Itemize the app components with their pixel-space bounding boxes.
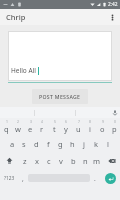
button[interactable]: POST MESSAGE <box>32 89 88 104</box>
button[interactable]: c <box>43 152 55 169</box>
staticText: u <box>76 124 81 134</box>
button[interactable]: s <box>18 135 30 152</box>
staticText: x <box>35 156 39 166</box>
button[interactable]: l <box>102 135 114 152</box>
staticText: 2:42 <box>108 1 118 8</box>
staticText: t <box>53 124 56 134</box>
staticText: c <box>47 156 51 166</box>
staticText: m <box>93 156 101 166</box>
staticText: 2 <box>17 119 19 124</box>
button[interactable]: Shift <box>0 152 18 169</box>
button[interactable]: g <box>54 135 66 152</box>
button[interactable]: f <box>42 135 54 152</box>
staticText: g <box>58 139 63 149</box>
button[interactable]: 5 <box>48 118 60 135</box>
staticText: a <box>10 139 15 149</box>
button[interactable]: v <box>55 152 67 169</box>
staticText: 3 <box>30 119 32 124</box>
button[interactable]: m <box>91 152 103 169</box>
staticText: h <box>70 139 75 149</box>
button[interactable]: Hello All <box>8 31 112 83</box>
staticText: z <box>23 156 27 166</box>
button[interactable]: 0 <box>108 118 120 135</box>
staticText: 1 <box>6 119 8 124</box>
staticText: POST MESSAGE <box>39 93 81 100</box>
button[interactable]: ?123 <box>0 169 18 187</box>
staticText: s <box>22 139 26 149</box>
button[interactable]: j <box>78 135 90 152</box>
staticText: l <box>107 139 109 149</box>
staticText: , <box>22 174 24 183</box>
staticText: 7 <box>78 119 80 124</box>
staticText: o <box>100 124 105 134</box>
staticText: i <box>89 124 91 134</box>
button[interactable]: z <box>18 152 31 169</box>
button[interactable]: 8 <box>84 118 96 135</box>
button[interactable]: n <box>79 152 91 169</box>
staticText: k <box>94 139 99 149</box>
staticText: y <box>64 124 68 134</box>
button[interactable]: More options <box>104 9 120 25</box>
button[interactable]: 4 <box>36 118 48 135</box>
button[interactable]: 6 <box>60 118 72 135</box>
staticText: p <box>112 124 117 134</box>
staticText: e <box>28 124 33 134</box>
button[interactable]: Voice input <box>109 107 120 118</box>
button[interactable]: d <box>30 135 42 152</box>
staticText: Chrip <box>6 12 26 22</box>
button[interactable]: b <box>67 152 79 169</box>
staticText: 9 <box>102 119 104 124</box>
button[interactable]: 7 <box>72 118 84 135</box>
staticText: q <box>4 124 9 134</box>
button[interactable]: 3 <box>24 118 36 135</box>
button[interactable]: 9 <box>96 118 108 135</box>
staticText: w <box>15 124 21 134</box>
staticText: b <box>71 156 76 166</box>
button[interactable]: Backspace <box>103 152 120 169</box>
staticText: 8 <box>89 119 91 124</box>
staticText: j <box>83 139 85 149</box>
staticText: . <box>94 174 96 183</box>
button[interactable]: a <box>6 135 18 152</box>
staticText: 5 <box>54 119 56 124</box>
staticText: 4 <box>41 119 43 124</box>
staticText: d <box>34 139 39 149</box>
button[interactable]: . <box>90 169 100 187</box>
staticText: n <box>83 156 88 166</box>
button[interactable]: 1 <box>0 118 12 135</box>
staticText: f <box>47 139 50 149</box>
staticText: 6 <box>65 119 67 124</box>
staticText: v <box>59 156 63 166</box>
staticText: 0 <box>114 119 116 124</box>
staticText: ?123 <box>4 175 15 182</box>
staticText: Hello All <box>11 66 36 75</box>
button[interactable]: 2 <box>12 118 24 135</box>
button[interactable]: Enter <box>100 169 120 187</box>
staticText: r <box>40 124 44 134</box>
button[interactable]: h <box>66 135 78 152</box>
button[interactable]: k <box>90 135 102 152</box>
button[interactable]: x <box>31 152 43 169</box>
button[interactable]: , <box>18 169 28 187</box>
